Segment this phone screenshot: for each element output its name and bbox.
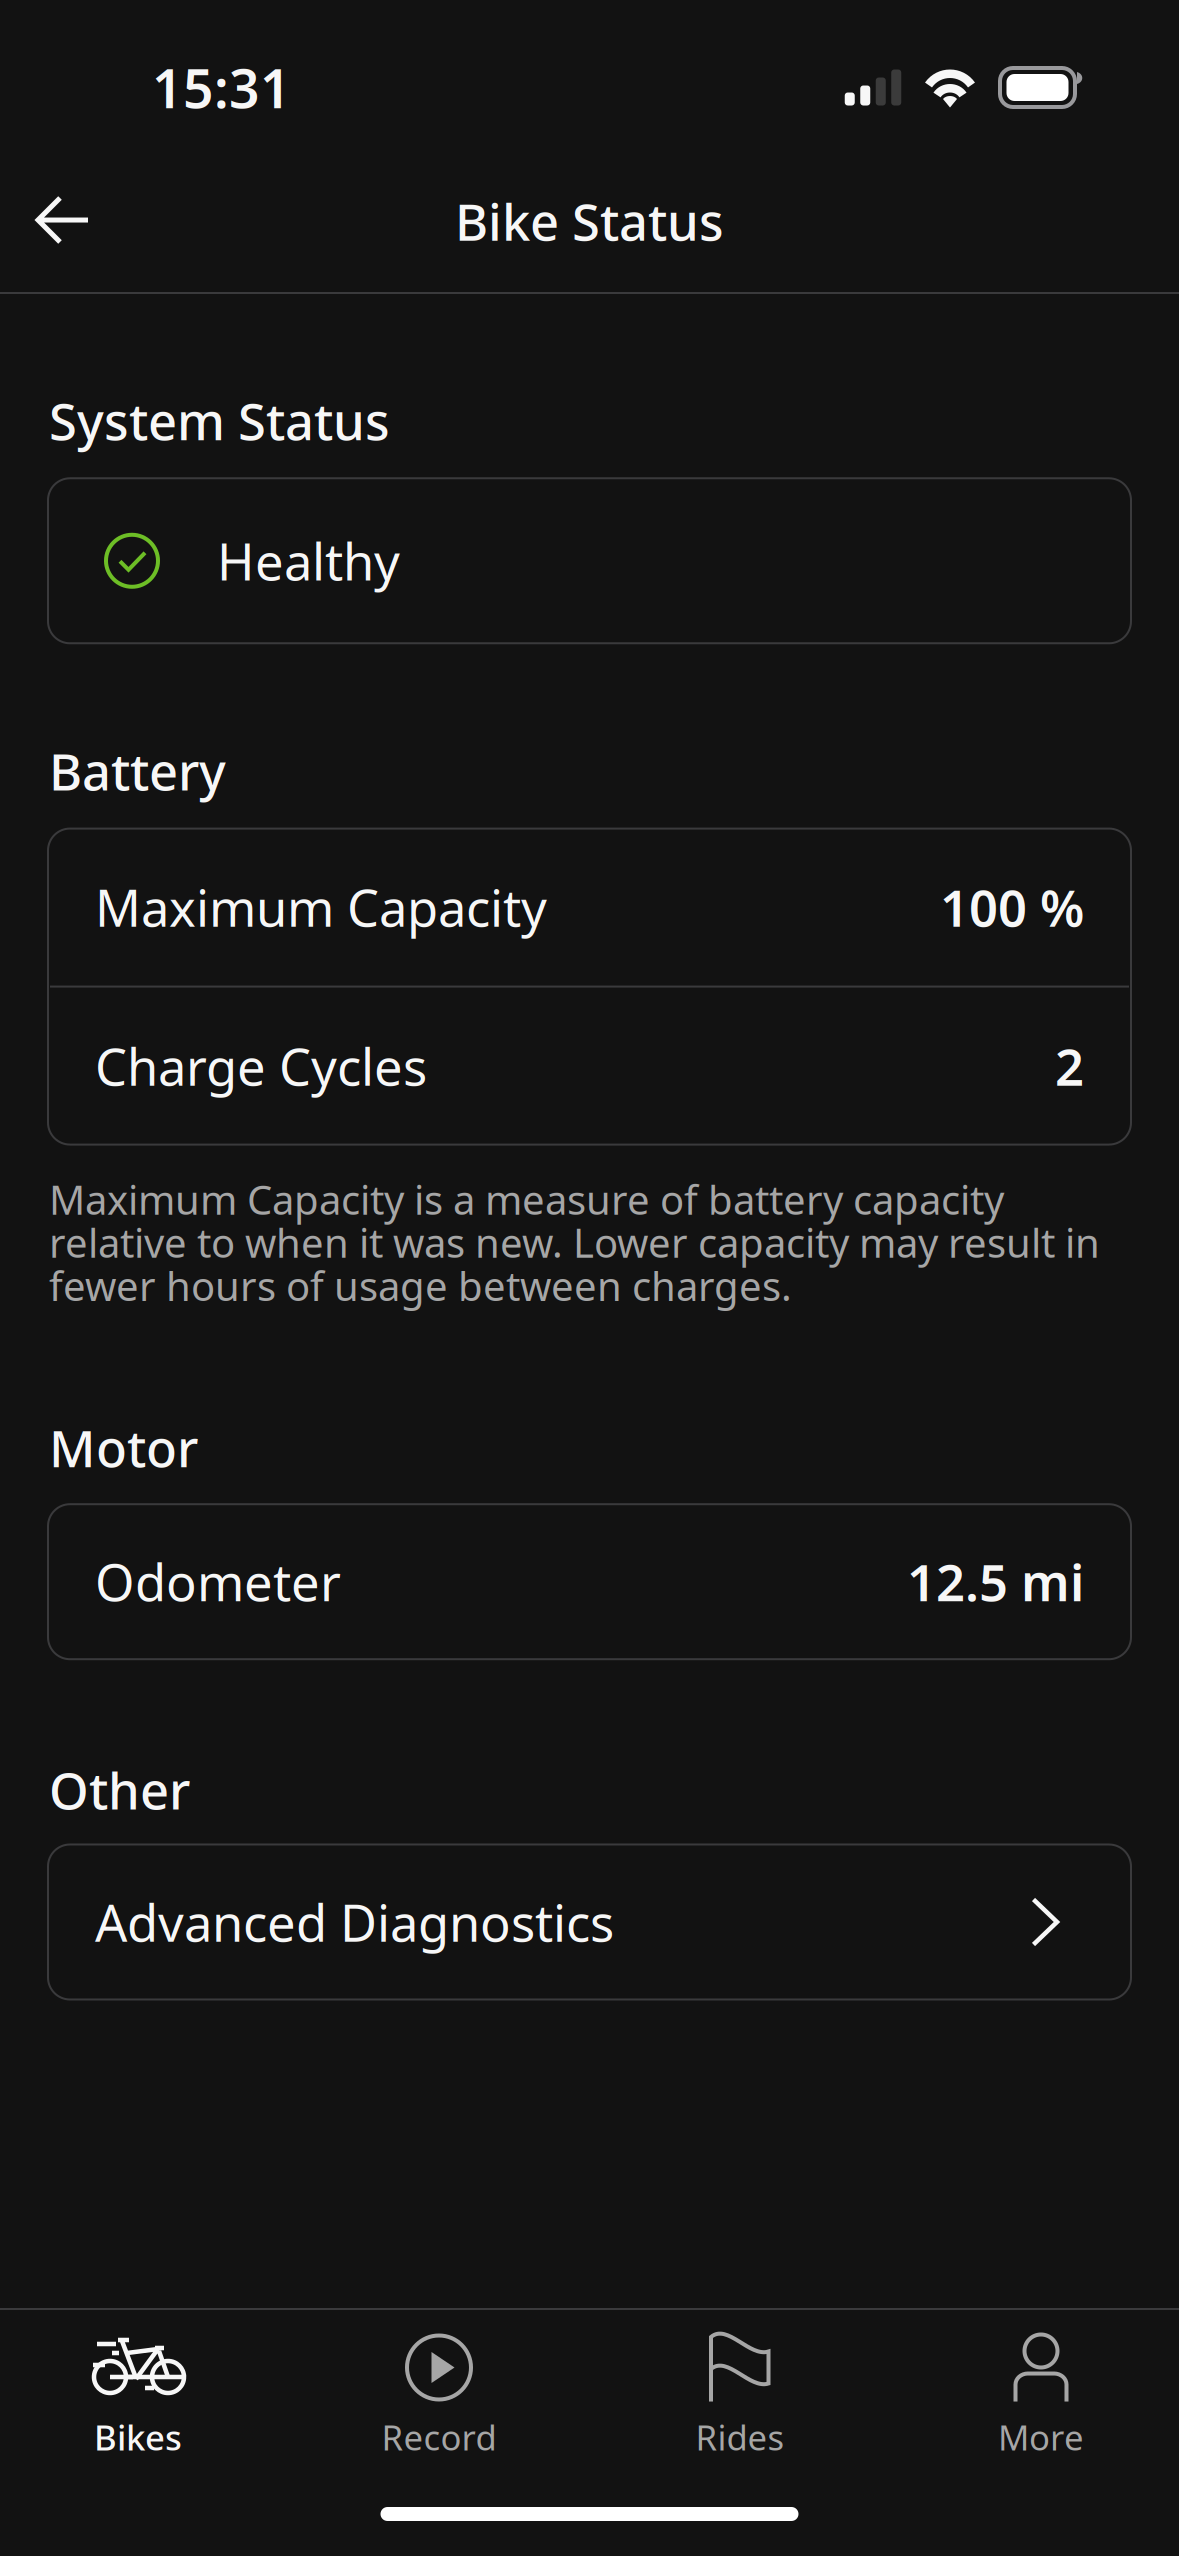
button[interactable]: Rides — [589, 2310, 890, 2507]
staticText: Bike Status — [455, 187, 724, 255]
staticText: Advanced Diagnostics — [95, 1888, 614, 1956]
button[interactable]: More — [890, 2310, 1179, 2507]
staticText: More — [998, 2414, 1084, 2460]
staticText: Charge Cycles — [95, 1032, 427, 1100]
staticText: System Status — [49, 387, 390, 454]
staticText: 100 % — [940, 873, 1084, 941]
button[interactable]: Back — [0, 166, 126, 276]
staticText: Maximum Capacity — [95, 873, 547, 941]
staticText: Battery — [49, 737, 226, 805]
staticText: Maximum Capacity is a measure of battery… — [49, 1173, 1100, 1312]
staticText: Bikes — [94, 2414, 182, 2460]
staticText: Rides — [695, 2414, 784, 2460]
staticText: Healthy — [217, 527, 400, 594]
staticText: 12.5 mi — [907, 1548, 1084, 1615]
staticText: Motor — [49, 1414, 198, 1481]
button[interactable]: Record — [288, 2310, 589, 2507]
staticText: 2 — [1055, 1032, 1084, 1100]
staticText: Odometer — [95, 1548, 341, 1615]
button[interactable]: Bikes — [0, 2310, 288, 2507]
staticText: 15:31 — [152, 52, 291, 123]
staticText: Other — [49, 1756, 190, 1823]
staticText: Record — [381, 2414, 496, 2460]
button[interactable]: Advanced Diagnostics — [0, 1844, 1179, 1999]
